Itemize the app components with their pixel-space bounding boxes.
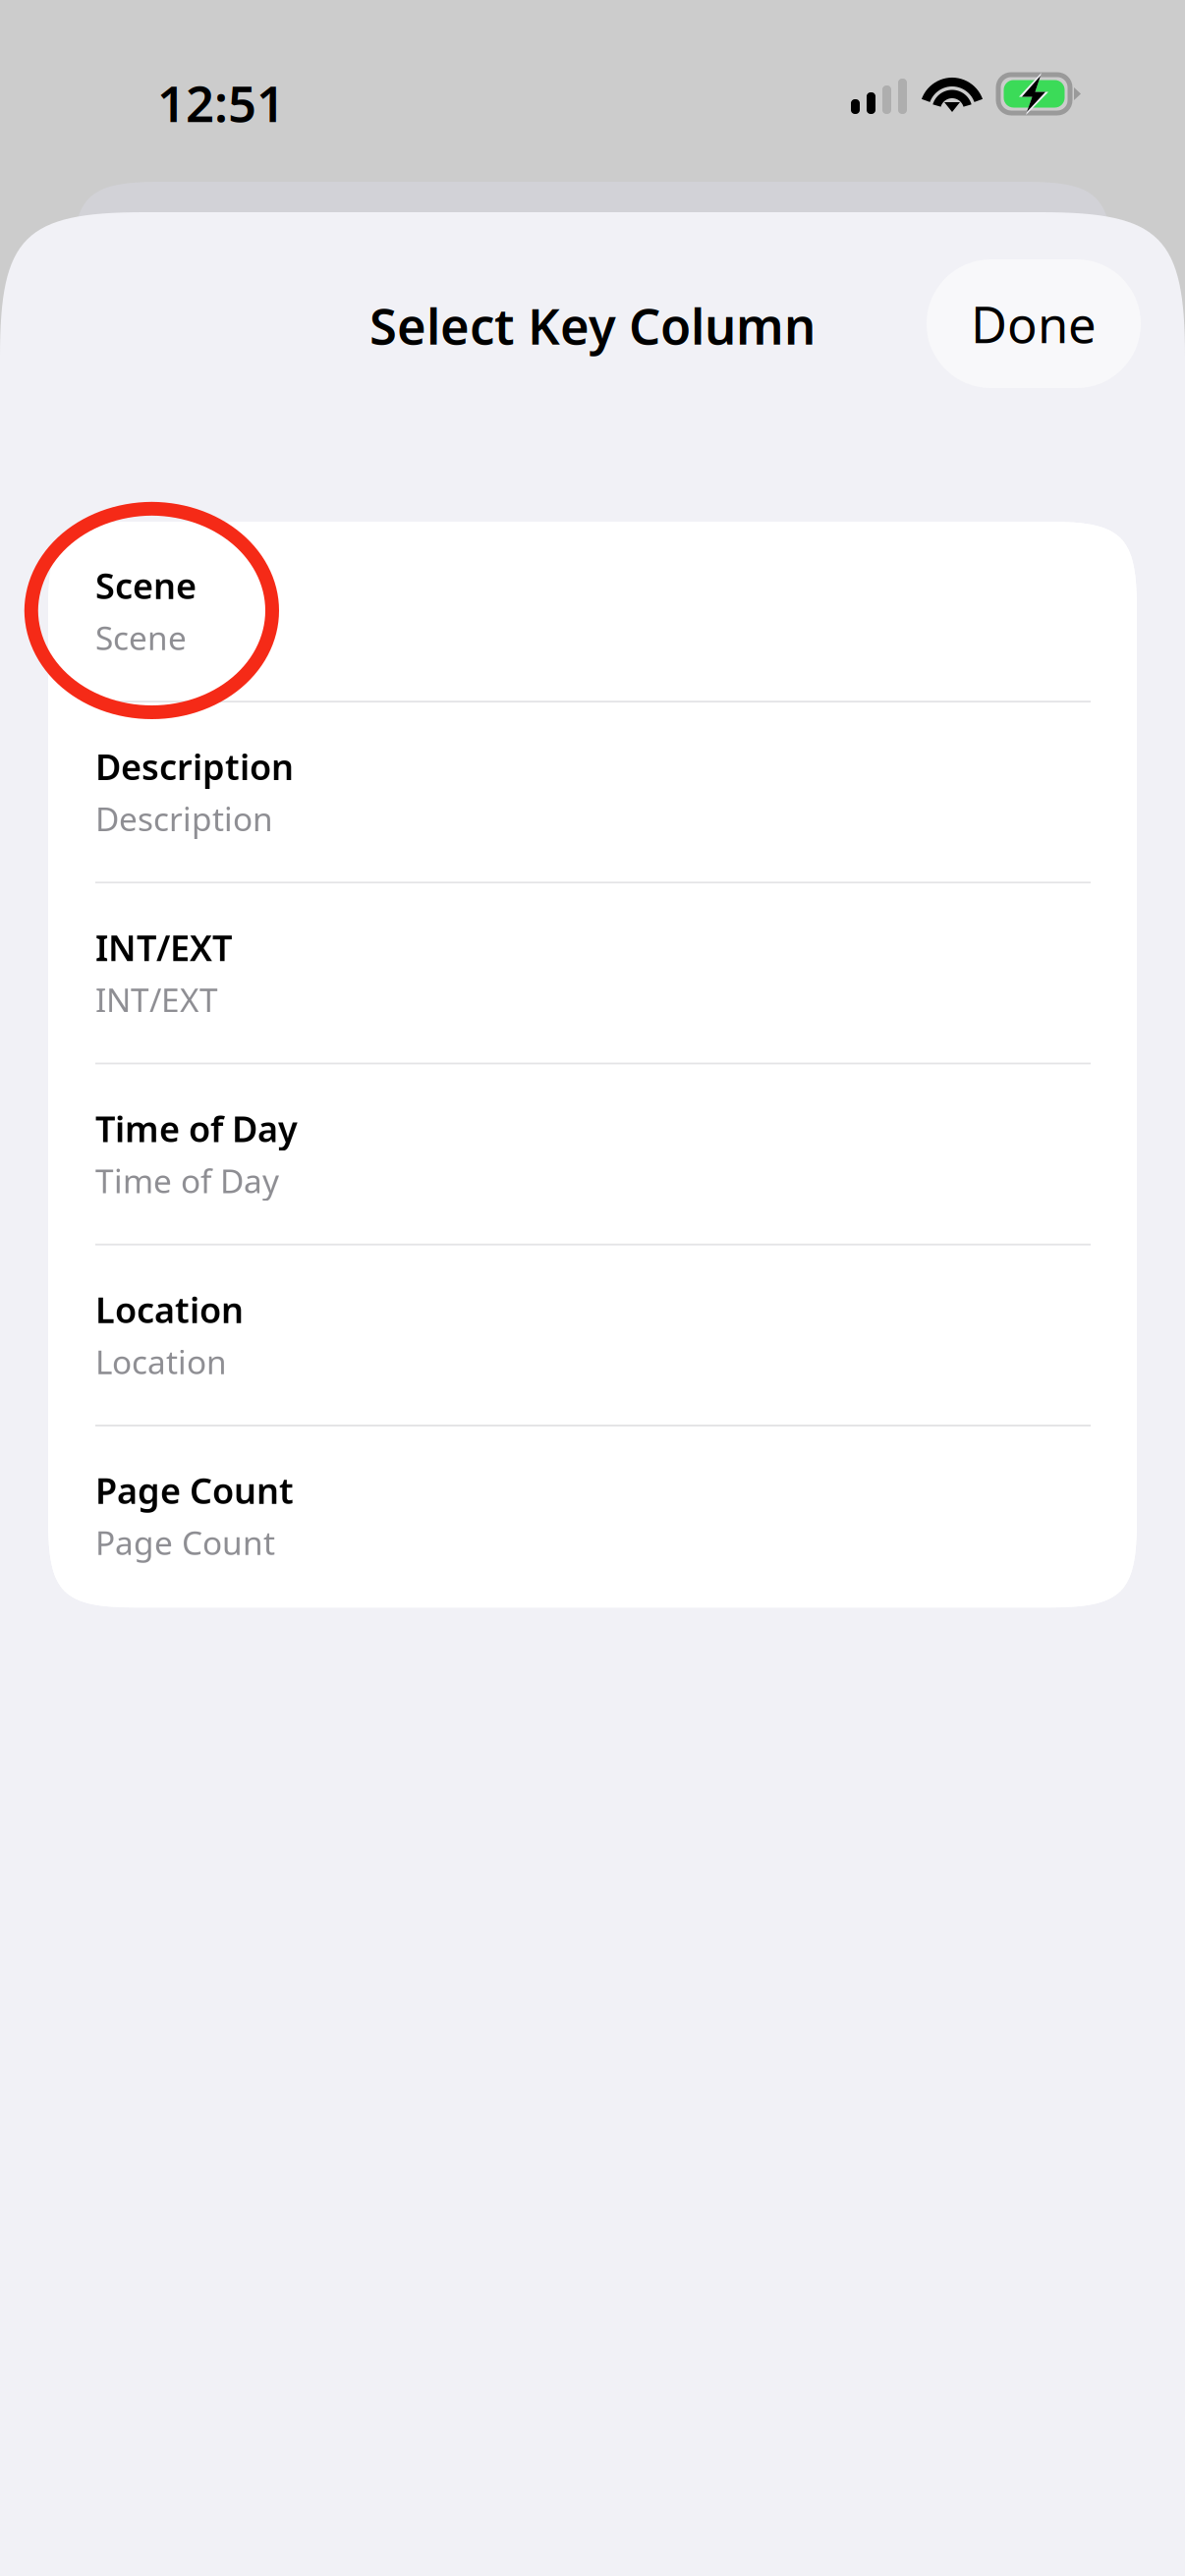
button[interactable]: Scene — [48, 522, 1137, 703]
staticText: Time of Day — [95, 1159, 279, 1202]
staticText: Description — [95, 797, 273, 840]
staticText: Location — [95, 1286, 244, 1333]
staticText: Time of Day — [95, 1105, 298, 1152]
staticText: Done — [971, 291, 1097, 357]
button[interactable]: Page Count — [48, 1427, 1137, 1607]
staticText: 12:51 — [157, 70, 285, 136]
button[interactable]: INT/EXT — [48, 884, 1137, 1065]
button[interactable]: Time of Day — [48, 1065, 1137, 1246]
staticText: Select Key Column — [369, 292, 816, 358]
staticText: Description — [95, 743, 294, 790]
staticText: Scene — [95, 562, 197, 609]
button[interactable]: Done — [927, 259, 1141, 388]
staticText: Page Count — [95, 1521, 275, 1564]
staticText: Scene — [95, 616, 187, 659]
staticText: INT/EXT — [95, 924, 232, 971]
staticText: INT/EXT — [95, 978, 218, 1021]
staticText: Page Count — [95, 1467, 294, 1514]
staticText: Location — [95, 1340, 227, 1383]
button[interactable]: Location — [48, 1246, 1137, 1427]
button[interactable]: Description — [48, 703, 1137, 884]
